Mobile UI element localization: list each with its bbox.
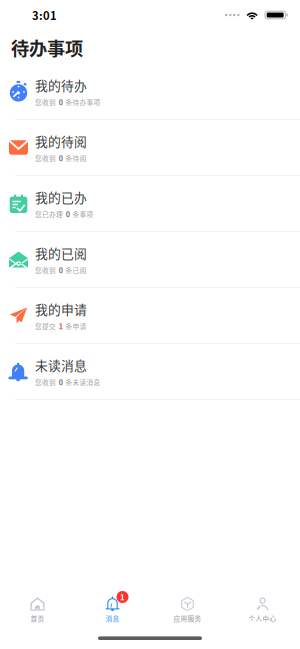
staticText: 首页 — [30, 613, 44, 623]
button[interactable]: 个人中心 — [225, 592, 300, 628]
staticText: 0 — [59, 97, 63, 107]
staticText: 我的申请 — [35, 300, 87, 318]
staticText: 0 — [66, 209, 70, 219]
staticText: 您已办理 — [35, 209, 63, 219]
button[interactable]: 首页 — [0, 592, 75, 628]
staticText: 条待阅 — [66, 153, 87, 163]
staticText: 条未读消息 — [66, 377, 101, 387]
staticText: 条已阅 — [66, 265, 87, 275]
button[interactable]: 未读消息 — [0, 344, 300, 400]
staticText: 0 — [59, 265, 63, 275]
staticText: 个人中心 — [248, 613, 276, 623]
staticText: 我的已阅 — [35, 244, 87, 262]
button[interactable]: 我的已阅 — [0, 232, 300, 288]
staticText: 条事项 — [73, 209, 94, 219]
staticText: 您收到 — [35, 377, 56, 387]
staticText: 0 — [59, 153, 63, 163]
staticText: 我的已办 — [35, 188, 87, 206]
staticText: 您收到 — [35, 265, 56, 275]
button[interactable]: 1 — [75, 592, 150, 628]
staticText: 应用服务 — [173, 613, 201, 623]
staticText: 条申请 — [66, 321, 87, 331]
button[interactable]: 我的申请 — [0, 288, 300, 344]
staticText: 我的待阅 — [35, 132, 87, 150]
staticText: 1 — [59, 321, 63, 331]
staticText: 您提交 — [35, 321, 56, 331]
staticText: 1 — [120, 591, 125, 603]
staticText: 待办事项 — [11, 34, 83, 61]
button[interactable]: 我的待办 — [0, 64, 300, 120]
staticText: 条待办事项 — [66, 97, 101, 107]
staticText: 消息 — [105, 613, 119, 623]
button[interactable]: 应用服务 — [150, 592, 225, 628]
staticText: 您收到 — [35, 153, 56, 163]
staticText: 我的待办 — [35, 76, 87, 94]
staticText: 0 — [59, 377, 63, 387]
button[interactable]: 我的已办 — [0, 176, 300, 232]
button[interactable]: 我的待阅 — [0, 120, 300, 176]
staticText: 3:01 — [32, 7, 57, 23]
staticText: 您收到 — [35, 97, 56, 107]
staticText: 未读消息 — [35, 356, 87, 374]
